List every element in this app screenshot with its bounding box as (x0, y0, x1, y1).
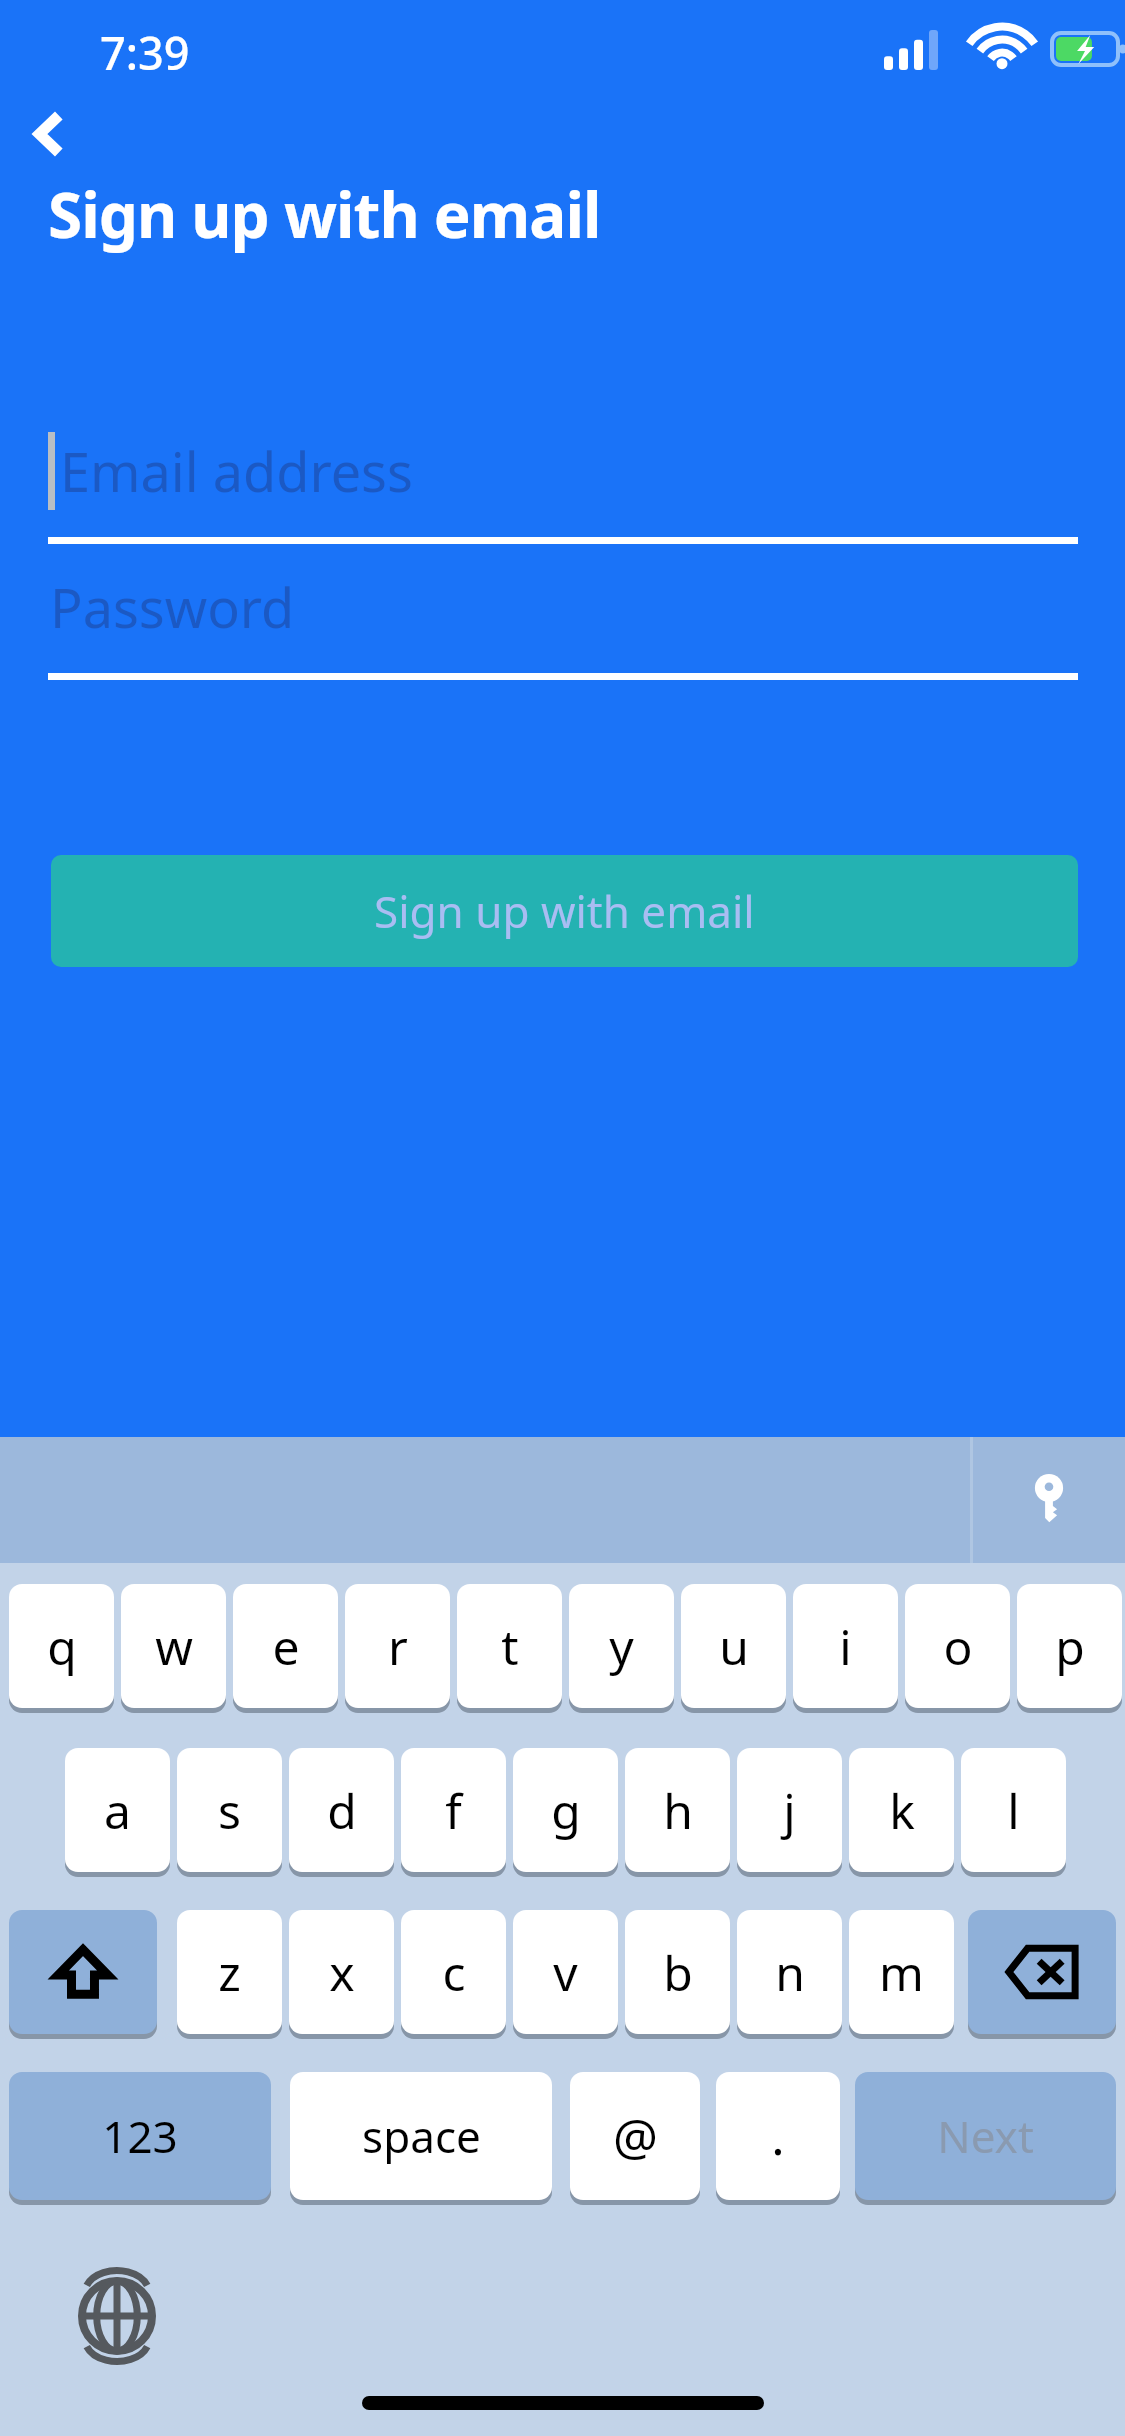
staticText: j (783, 1778, 796, 1843)
button[interactable]: g (513, 1748, 618, 1872)
button[interactable]: Password (48, 556, 1078, 680)
staticText: e (272, 1614, 300, 1679)
button[interactable]: j (737, 1748, 842, 1872)
button[interactable]: i (793, 1584, 898, 1708)
button[interactable]: 123 (9, 2072, 271, 2200)
staticText: x (329, 1940, 355, 2005)
button[interactable]: t (457, 1584, 562, 1708)
staticText: . (771, 2102, 785, 2170)
staticText: Sign up with email (374, 881, 755, 941)
button[interactable]: x (289, 1910, 394, 2034)
button[interactable]: u (681, 1584, 786, 1708)
button[interactable]: d (289, 1748, 394, 1872)
button[interactable]: w (121, 1584, 226, 1708)
button[interactable]: Passwords (973, 1437, 1125, 1563)
button[interactable]: e (233, 1584, 338, 1708)
staticText: r (388, 1614, 408, 1679)
button[interactable]: f (401, 1748, 506, 1872)
button[interactable]: r (345, 1584, 450, 1708)
button[interactable]: Email address (48, 420, 1078, 544)
button[interactable]: Next (855, 2072, 1116, 2200)
staticText: a (104, 1778, 131, 1843)
button[interactable]: h (625, 1748, 730, 1872)
staticText: v (553, 1940, 578, 2005)
staticText: p (1055, 1614, 1085, 1679)
staticText: z (218, 1940, 241, 2005)
button[interactable]: q (9, 1584, 114, 1708)
button[interactable]: n (737, 1910, 842, 2034)
button[interactable]: Shift (9, 1910, 157, 2034)
staticText: f (445, 1778, 462, 1843)
staticText: i (839, 1614, 852, 1679)
button[interactable]: Sign up with email (51, 855, 1078, 967)
button[interactable]: Change keyboard (62, 2261, 172, 2371)
button[interactable]: . (716, 2072, 840, 2200)
staticText: h (663, 1778, 693, 1843)
staticText: b (663, 1940, 693, 2005)
button[interactable]: k (849, 1748, 954, 1872)
staticText: c (442, 1940, 466, 2005)
button[interactable]: l (961, 1748, 1066, 1872)
button[interactable]: o (905, 1584, 1010, 1708)
staticText: u (719, 1614, 749, 1679)
button[interactable]: s (177, 1748, 282, 1872)
button[interactable]: v (513, 1910, 618, 2034)
staticText: Email address (60, 434, 413, 508)
staticText: g (551, 1778, 581, 1843)
button[interactable]: @ (570, 2072, 700, 2200)
staticText: @ (613, 2102, 658, 2170)
button[interactable]: a (65, 1748, 170, 1872)
staticText: Next (937, 2106, 1034, 2166)
button[interactable]: p (1017, 1584, 1122, 1708)
staticText: y (609, 1614, 634, 1679)
button[interactable]: m (849, 1910, 954, 2034)
button[interactable]: y (569, 1584, 674, 1708)
staticText: t (501, 1614, 519, 1679)
staticText: l (1007, 1778, 1020, 1843)
button[interactable]: b (625, 1910, 730, 2034)
staticText: k (889, 1778, 915, 1843)
staticText: 123 (102, 2106, 178, 2166)
button[interactable]: c (401, 1910, 506, 2034)
button[interactable]: space (290, 2072, 552, 2200)
button[interactable]: Back (8, 92, 92, 176)
staticText: s (218, 1778, 241, 1843)
button[interactable]: Backspace (968, 1910, 1116, 2034)
staticText: space (362, 2106, 481, 2166)
staticText: o (943, 1614, 973, 1679)
staticText: m (879, 1940, 924, 2005)
button[interactable]: z (177, 1910, 282, 2034)
staticText: w (155, 1614, 193, 1679)
staticText: d (327, 1778, 357, 1843)
staticText: n (775, 1940, 805, 2005)
staticText: 7:39 (100, 22, 190, 83)
staticText: Sign up with email (48, 172, 601, 256)
staticText: Password (50, 570, 295, 644)
staticText: q (47, 1614, 77, 1679)
